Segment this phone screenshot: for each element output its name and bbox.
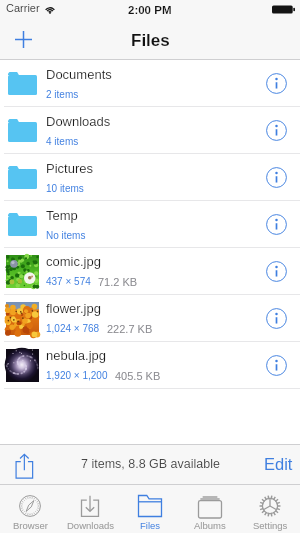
button[interactable]: Info (254, 248, 300, 294)
button[interactable]: Downloads (60, 484, 120, 533)
staticText: 7 items, 8.8 GB available (81, 457, 220, 471)
button[interactable]: Share (0, 444, 48, 484)
button[interactable]: Info (254, 342, 300, 388)
staticText: No items (46, 230, 86, 241)
staticText: Settings (253, 520, 288, 531)
button[interactable]: Edit (264, 444, 293, 484)
staticText: Files (140, 520, 161, 531)
staticText: 10 items (46, 183, 84, 194)
staticText: 4 items (46, 136, 79, 147)
button[interactable]: Browser (0, 484, 60, 533)
staticText: 1,024 × 768 (46, 323, 100, 334)
staticText: 2 items (46, 89, 79, 100)
staticText: 71.2 KB (98, 276, 138, 288)
staticText: Browser (13, 520, 48, 531)
button[interactable]: Add (0, 20, 47, 60)
button[interactable]: Temp (0, 201, 300, 248)
staticText: Files (131, 31, 170, 50)
button[interactable]: Downloads (0, 107, 300, 154)
button[interactable]: Info (254, 201, 300, 247)
staticText: nebula.jpg (46, 348, 106, 363)
staticText: Albums (194, 520, 226, 531)
button[interactable]: Info (254, 107, 300, 153)
staticText: Downloads (46, 114, 111, 129)
staticText: 1,920 × 1,200 (46, 370, 108, 381)
staticText: flower.jpg (46, 301, 101, 316)
button[interactable]: flower.jpg (0, 295, 300, 342)
staticText: Downloads (67, 520, 114, 531)
button[interactable]: Pictures (0, 154, 300, 201)
staticText: 2:00 PM (128, 4, 172, 17)
button[interactable]: Info (254, 60, 300, 106)
staticText: comic.jpg (46, 254, 101, 269)
button[interactable]: Info (254, 295, 300, 341)
staticText: Temp (46, 208, 78, 223)
button[interactable]: Info (254, 154, 300, 200)
button[interactable]: Settings (240, 484, 300, 533)
button[interactable]: Albums (180, 484, 240, 533)
staticText: Edit (264, 455, 293, 473)
staticText: Carrier (6, 2, 40, 14)
button[interactable]: Documents (0, 60, 300, 107)
button[interactable]: nebula.jpg (0, 342, 300, 389)
staticText: 437 × 574 (46, 276, 91, 287)
staticText: Documents (46, 67, 112, 82)
button[interactable]: comic.jpg (0, 248, 300, 295)
staticText: Pictures (46, 161, 93, 176)
staticText: 222.7 KB (107, 323, 153, 335)
staticText: 405.5 KB (115, 370, 161, 382)
button[interactable]: Files (120, 484, 180, 533)
